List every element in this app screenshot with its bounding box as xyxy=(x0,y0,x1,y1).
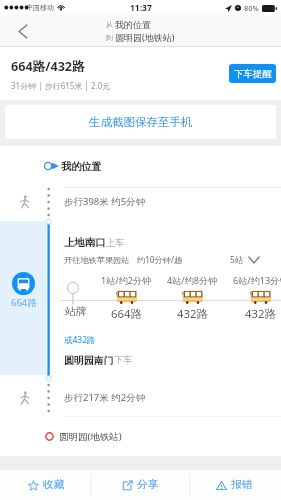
staticText: 圆明园南门 xyxy=(64,354,114,366)
button[interactable]: Back xyxy=(0,15,44,47)
staticText: 站牌 xyxy=(65,305,87,319)
staticText: 432路 xyxy=(245,306,276,321)
staticText: 664路/432路 xyxy=(11,58,85,75)
button[interactable]: 报错 xyxy=(187,470,281,500)
staticText: 开往地铁苹果园站 xyxy=(64,255,130,265)
staticText: 我的位置 xyxy=(115,19,151,30)
staticText: 432路 xyxy=(177,306,208,321)
staticText: 步行217米 约2分钟 xyxy=(64,391,146,404)
staticText: 下车提醒 xyxy=(234,68,272,80)
button[interactable]: 1站/约2分钟 xyxy=(97,274,156,321)
staticText: 1站/约2分钟 xyxy=(101,274,152,286)
staticText: 上车 xyxy=(106,237,125,249)
button[interactable]: 我的位置 xyxy=(44,158,102,174)
staticText: 上地南口 xyxy=(64,236,106,249)
button[interactable]: 分享 xyxy=(93,470,187,500)
staticText: 6站/约13分钟 xyxy=(233,274,281,286)
staticText: 或432路 xyxy=(64,334,96,346)
button[interactable]: 生成截图保存至手机 xyxy=(5,105,276,139)
button[interactable]: 下车提醒 xyxy=(229,64,276,83)
staticText: 圆明园(地铁站) xyxy=(59,430,122,443)
staticText: 中国移动 xyxy=(26,3,54,12)
staticText: 圆明园(地铁站) xyxy=(115,31,175,43)
staticText: 到 xyxy=(106,33,115,43)
staticText: 从 xyxy=(106,20,115,30)
staticText: 约10分钟/趟 xyxy=(137,254,183,265)
staticText: 80% xyxy=(244,3,259,13)
staticText: 我的位置 xyxy=(61,160,102,173)
button[interactable]: 圆明园(地铁站) xyxy=(45,428,122,444)
staticText: 生成截图保存至手机 xyxy=(89,115,193,129)
staticText: 31分钟 | 步行615米 | 2.0元 xyxy=(11,80,111,91)
button[interactable]: 收藏 xyxy=(0,470,93,500)
staticText: 4站/约8分钟 xyxy=(167,274,218,286)
staticText: 步行398米 约5分钟 xyxy=(64,195,146,208)
staticText: 664路 xyxy=(11,296,37,309)
button[interactable]: 6站/约13分钟 xyxy=(231,274,281,321)
staticText: 分享 xyxy=(137,478,159,492)
button[interactable]: 5站 xyxy=(230,253,259,266)
staticText: 下车 xyxy=(114,354,133,366)
staticText: 5站 xyxy=(230,254,244,266)
staticText: 664路 xyxy=(111,306,142,321)
button[interactable]: 4站/约8分钟 xyxy=(163,274,222,321)
staticText: 11:37 xyxy=(130,2,152,14)
staticText: 报错 xyxy=(231,478,253,492)
staticText: 收藏 xyxy=(43,478,65,492)
